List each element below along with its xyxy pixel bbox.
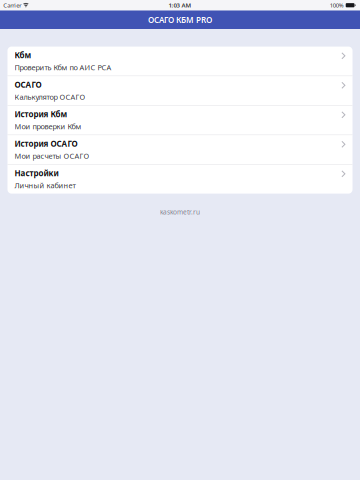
staticText: Carrier <box>3 1 21 9</box>
staticText: Проверить Кбм по АИС РСА <box>14 62 111 72</box>
staticText: Настройки <box>14 168 58 179</box>
staticText: История Кбм <box>14 109 67 120</box>
button[interactable]: История ОСАГО <box>7 135 352 164</box>
button[interactable]: Настройки <box>7 165 352 194</box>
button[interactable]: Кбм <box>7 47 352 76</box>
staticText: kaskometr.ru <box>160 208 200 216</box>
staticText: 100% <box>330 1 344 9</box>
staticText: 1:03 AM <box>168 1 191 9</box>
staticText: История ОСАГО <box>14 138 77 149</box>
staticText: Мои проверки Кбм <box>14 121 81 131</box>
staticText: Личный кабинет <box>14 180 75 190</box>
staticText: Калькулятор ОСАГО <box>14 92 85 102</box>
button[interactable]: ОСАГО <box>7 76 352 105</box>
staticText: Кбм <box>14 50 31 61</box>
staticText: ОСАГО КБМ PRO <box>148 14 212 25</box>
staticText: ОСАГО <box>14 79 41 90</box>
staticText: Мои расчеты ОСАГО <box>14 151 89 161</box>
button[interactable]: История Кбм <box>7 106 352 135</box>
